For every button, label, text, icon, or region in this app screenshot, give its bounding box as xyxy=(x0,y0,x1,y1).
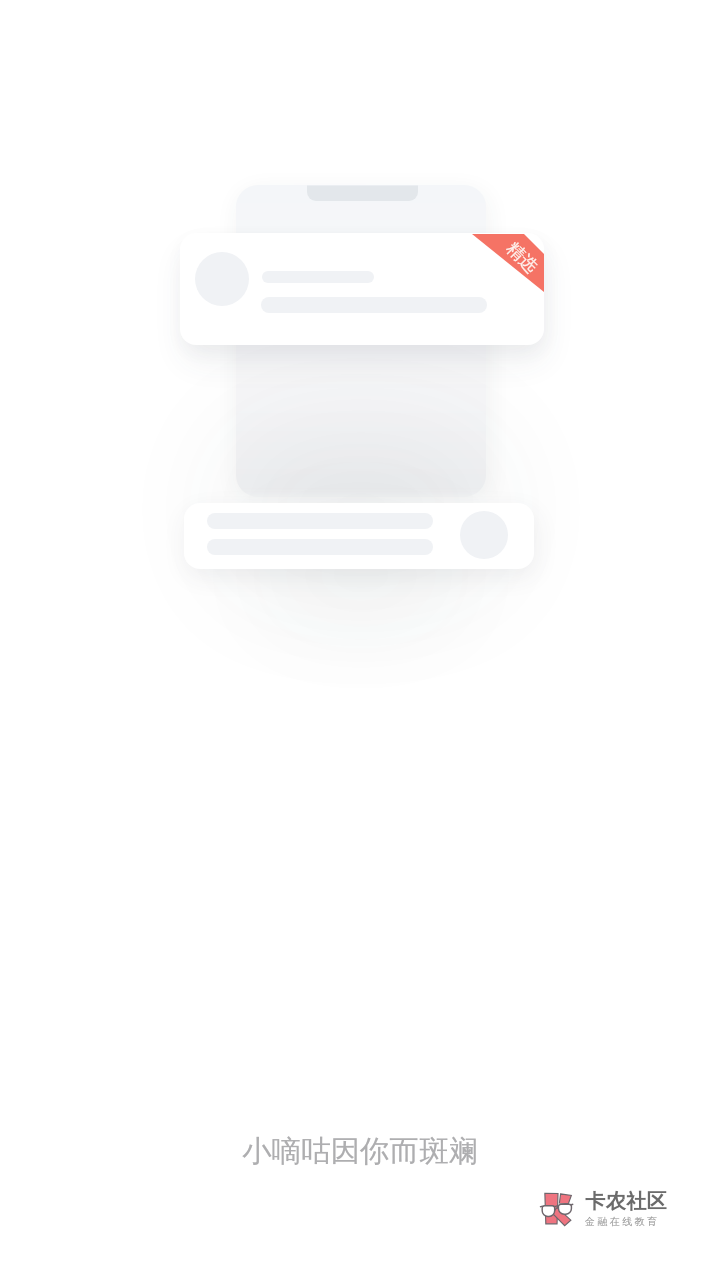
button[interactable]: 卡农社区 金融在线教育 xyxy=(538,1188,667,1228)
staticText: 卡农社区 xyxy=(585,1189,667,1214)
button[interactable]: 精选内容卡片 xyxy=(180,233,544,345)
staticText: 精选 xyxy=(502,237,542,277)
staticText: 小嘀咕因你而斑斓 xyxy=(242,1133,478,1170)
button[interactable]: 内容卡片 xyxy=(184,503,534,569)
staticText: 金融在线教育 xyxy=(585,1215,660,1228)
